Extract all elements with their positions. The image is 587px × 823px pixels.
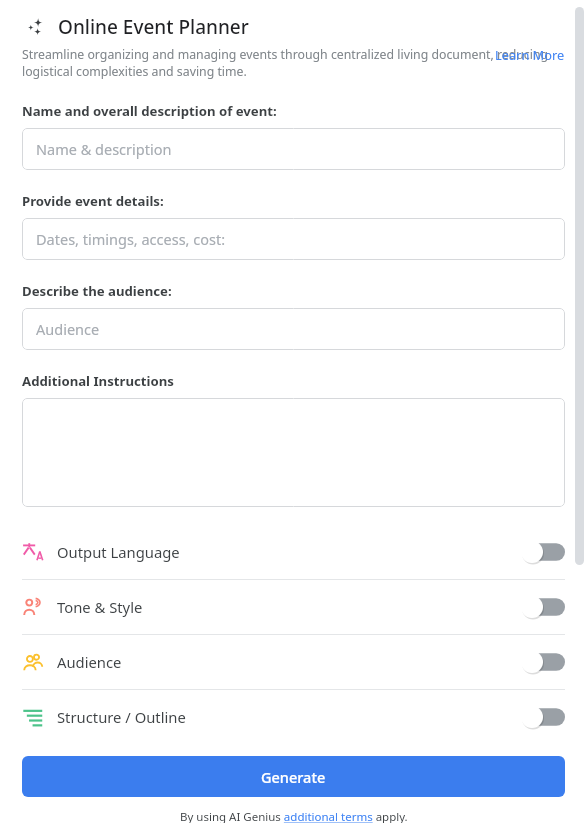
staticText: Describe the audience: (22, 282, 172, 300)
staticText: Name & description (36, 139, 172, 159)
other: Toggle Audience (521, 651, 565, 673)
staticText: Provide event details: (22, 192, 164, 210)
button[interactable]: Learn More (495, 46, 565, 63)
staticText: Streamline organizing and managing event… (22, 46, 549, 79)
button[interactable]: Output Language (0, 525, 587, 579)
staticText: Tone & Style (57, 597, 521, 617)
button[interactable]: Structure / Outline (0, 690, 587, 744)
staticText: Learn More (495, 46, 565, 63)
staticText: Audience (36, 319, 100, 339)
staticText: Online Event Planner (58, 14, 249, 40)
button[interactable]: By using AI Genius additional terms appl… (180, 809, 408, 823)
button[interactable]: Tone & Style (0, 580, 587, 634)
staticText: Audience (57, 652, 521, 672)
button[interactable]: Generate (22, 756, 565, 797)
staticText: Dates, timings, access, cost: (36, 229, 226, 249)
button[interactable]: Dates, timings, access, cost: (22, 218, 565, 260)
staticText: Additional Instructions (22, 372, 174, 390)
staticText: Name and overall description of event: (22, 102, 277, 120)
button[interactable]: Name & description (22, 128, 565, 170)
staticText: Output Language (57, 542, 521, 562)
other: Toggle Output Language (521, 541, 565, 563)
button[interactable]: Audience (0, 635, 587, 689)
other: Toggle Tone & Style (521, 596, 565, 618)
staticText: Generate (261, 767, 326, 787)
staticText: Structure / Outline (57, 707, 521, 727)
button[interactable]: Audience (22, 308, 565, 350)
other: Toggle Structure / Outline (521, 706, 565, 728)
button[interactable] (22, 398, 565, 507)
